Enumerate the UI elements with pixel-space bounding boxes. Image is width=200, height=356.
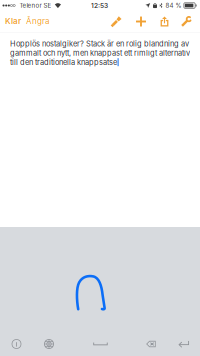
staticText: Klar <box>5 16 21 26</box>
button[interactable]: Retur <box>172 334 195 354</box>
staticText: till den traditionella knappsatse <box>10 58 117 67</box>
button[interactable]: Lägg till <box>128 11 153 32</box>
button[interactable]: Ångra <box>22 11 52 32</box>
staticText: 84 % <box>165 2 181 9</box>
button[interactable]: Radera <box>130 334 172 354</box>
button[interactable]: Information <box>0 334 33 354</box>
staticText: 12:53 <box>91 1 108 9</box>
staticText: Ångra <box>26 16 49 26</box>
button[interactable]: Markera <box>103 11 128 32</box>
button[interactable]: Dela <box>153 11 175 32</box>
button[interactable]: Klar <box>3 11 22 32</box>
button[interactable]: Byt tangentbord <box>33 334 65 354</box>
button[interactable]: Mellanslag <box>71 334 130 354</box>
staticText: Hopplös nostalgiker? Stack är en rolig b… <box>10 39 189 48</box>
button[interactable]: Verktyg <box>175 11 197 32</box>
staticText: Telenor SE <box>19 2 51 9</box>
staticText: gammalt och nytt, men knappast ett rimli… <box>10 48 190 57</box>
